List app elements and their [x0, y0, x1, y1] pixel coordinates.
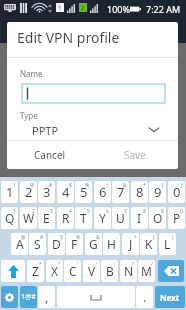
button[interactable]: 3: [38, 181, 55, 203]
staticText: ?: [132, 261, 135, 268]
staticText: C: [69, 263, 77, 279]
staticText: ^: [106, 182, 109, 189]
button[interactable]: X: [46, 260, 63, 282]
button[interactable]: [22, 84, 165, 103]
button[interactable]: 5: [75, 181, 92, 203]
staticText: .: [143, 289, 147, 305]
button[interactable]: W: [20, 207, 37, 229]
button[interactable]: Settings: [1, 286, 18, 308]
button[interactable]: N: [120, 260, 137, 282]
staticText: 6: [99, 183, 107, 201]
button[interactable]: P: [168, 207, 185, 229]
button[interactable]: T: [75, 207, 92, 229]
staticText: 2: [32, 208, 35, 215]
button[interactable]: G: [85, 233, 102, 255]
button[interactable]: 8: [131, 181, 148, 203]
button[interactable]: O: [149, 207, 166, 229]
button[interactable]: Cancel: [7, 141, 92, 169]
button[interactable]: 6: [94, 181, 111, 203]
staticText: 1: [13, 208, 16, 215]
button[interactable]: Y: [94, 207, 111, 229]
staticText: 9: [154, 183, 162, 201]
staticText: 3: [50, 208, 53, 215]
staticText: O: [153, 210, 163, 226]
staticText: 2: [81, 4, 85, 12]
button[interactable]: 1@#: [20, 286, 37, 308]
staticText: 8: [143, 208, 146, 215]
button[interactable]: Next: [155, 286, 185, 308]
button[interactable]: 9: [149, 181, 166, 203]
button[interactable]: V: [83, 260, 100, 282]
staticText: ): [181, 182, 183, 189]
staticText: ,: [45, 289, 49, 305]
staticText: /: [151, 261, 153, 268]
button[interactable]: F: [66, 233, 83, 255]
staticText: V: [88, 263, 96, 279]
staticText: T: [80, 210, 87, 226]
staticText: Type: [20, 110, 38, 121]
staticText: K: [145, 236, 153, 252]
staticText: (: [153, 234, 155, 241]
staticText: M: [141, 263, 152, 279]
button[interactable]: S: [29, 233, 46, 255]
button[interactable]: 2: [20, 181, 37, 203]
staticText: B: [106, 263, 114, 279]
staticText: &: [123, 182, 127, 189]
staticText: PPTP: [32, 123, 59, 138]
staticText: 2: [25, 183, 33, 201]
staticText: Q: [5, 210, 15, 226]
button[interactable]: U: [112, 207, 129, 229]
button[interactable]: .: [136, 286, 153, 308]
button[interactable]: D: [48, 233, 65, 255]
button[interactable]: Shift: [1, 260, 25, 282]
button[interactable]: 1: [1, 181, 18, 203]
staticText: 1: [6, 183, 14, 201]
staticText: 7: [124, 208, 127, 215]
staticText: ;: [114, 261, 116, 268]
staticText: Z: [32, 263, 39, 279]
button[interactable]: Backspace: [158, 260, 184, 282]
staticText: 3: [43, 183, 51, 201]
button[interactable]: PPTP: [7, 121, 178, 139]
staticText: A: [16, 236, 24, 252]
button[interactable]: R: [57, 207, 74, 229]
button[interactable]: E: [38, 207, 55, 229]
staticText: 6: [106, 208, 109, 215]
staticText: ": [58, 261, 61, 268]
staticText: 7:22 AM: [146, 3, 181, 15]
button[interactable]: ,: [38, 286, 55, 308]
staticText: I: [137, 210, 142, 226]
staticText: ): [172, 234, 174, 241]
button[interactable]: [57, 286, 135, 308]
button[interactable]: 0: [168, 181, 185, 203]
staticText: 7: [117, 183, 125, 201]
staticText: $: [69, 182, 72, 189]
button[interactable]: Z: [27, 260, 44, 282]
staticText: &: [96, 234, 100, 241]
button[interactable]: J: [122, 233, 139, 255]
button[interactable]: 4: [57, 181, 74, 203]
button[interactable]: H: [103, 233, 120, 255]
button[interactable]: B: [101, 260, 118, 282]
staticText: Name: [20, 68, 43, 79]
button[interactable]: A: [11, 233, 28, 255]
button[interactable]: C: [64, 260, 81, 282]
staticText: +: [134, 234, 137, 241]
staticText: U: [116, 210, 125, 226]
staticText: J: [129, 236, 133, 252]
staticText: ': [77, 261, 79, 268]
button[interactable]: Save: [92, 141, 178, 169]
button[interactable]: Q: [1, 207, 18, 229]
staticText: #: [40, 234, 44, 241]
button[interactable]: M: [138, 260, 155, 282]
staticText: 0: [173, 183, 181, 201]
staticText: %: [85, 182, 90, 189]
button[interactable]: I: [131, 207, 148, 229]
button[interactable]: L: [159, 233, 176, 255]
button[interactable]: K: [140, 233, 157, 255]
button[interactable]: 7: [112, 181, 129, 203]
staticText: 5: [80, 183, 88, 201]
staticText: D: [52, 236, 61, 252]
staticText: @: [21, 234, 26, 241]
staticText: Save: [124, 148, 146, 162]
